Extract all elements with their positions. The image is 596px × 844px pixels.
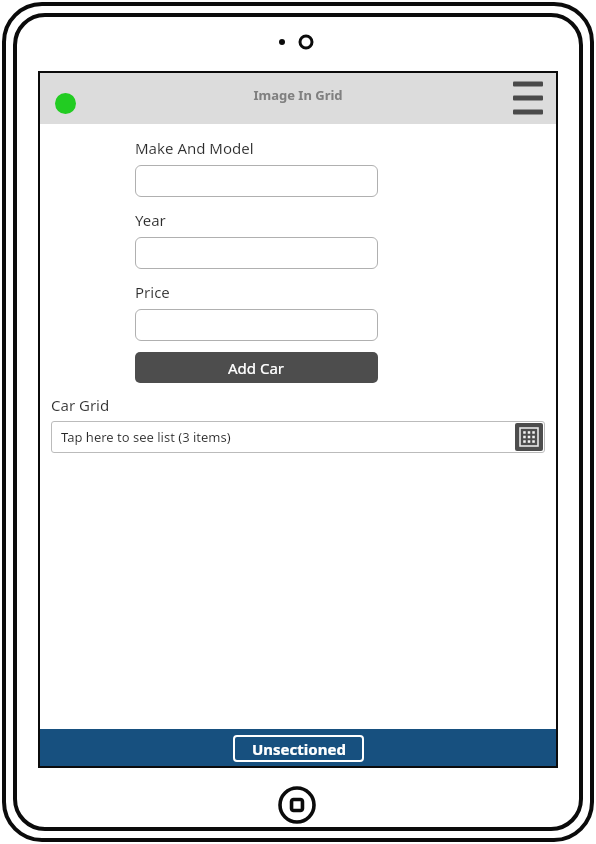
button[interactable]: Tap here to see list (3 items) xyxy=(51,421,545,453)
button[interactable] xyxy=(135,309,378,341)
button[interactable]: Status xyxy=(55,93,76,114)
button[interactable]: Show grid xyxy=(515,423,543,451)
button[interactable]: Menu xyxy=(506,76,550,120)
staticText: Make And Model xyxy=(135,138,254,158)
button[interactable]: Unsectioned xyxy=(233,735,364,762)
button[interactable] xyxy=(135,237,378,269)
button[interactable] xyxy=(135,165,378,197)
staticText: Car Grid xyxy=(51,395,110,415)
staticText: Image In Grid xyxy=(253,86,343,104)
staticText: Unsectioned xyxy=(252,739,346,759)
staticText: Tap here to see list (3 items) xyxy=(61,428,515,446)
button[interactable]: Home xyxy=(275,783,319,827)
button[interactable]: Add Car xyxy=(135,352,378,383)
staticText: Year xyxy=(135,210,166,230)
staticText: Price xyxy=(135,282,170,302)
staticText: Add Car xyxy=(228,358,285,378)
